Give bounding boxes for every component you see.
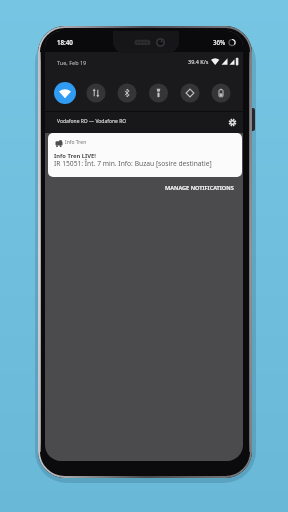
staticText: 18:40 bbox=[57, 38, 73, 46]
staticText: 36% bbox=[213, 38, 226, 46]
button[interactable] bbox=[228, 118, 237, 127]
button[interactable]: MANAGE NOTIFICATIONS bbox=[165, 184, 234, 192]
button[interactable] bbox=[45, 52, 243, 111]
staticText: MANAGE NOTIFICATIONS bbox=[165, 184, 234, 192]
staticText: Tue, Feb 19 bbox=[57, 59, 87, 66]
staticText: 39.4 K/s bbox=[188, 58, 209, 65]
staticText: Info Tren LIVE! bbox=[54, 152, 96, 160]
staticText: Info Tren bbox=[65, 139, 87, 146]
button[interactable] bbox=[45, 112, 243, 133]
staticText: IR 15051: Înt. 7 min. Info: Buzau [sosir… bbox=[54, 159, 212, 168]
button[interactable]: Info Tren bbox=[48, 133, 242, 177]
staticText: Vodafone RO — Vodafone RO bbox=[57, 118, 127, 125]
